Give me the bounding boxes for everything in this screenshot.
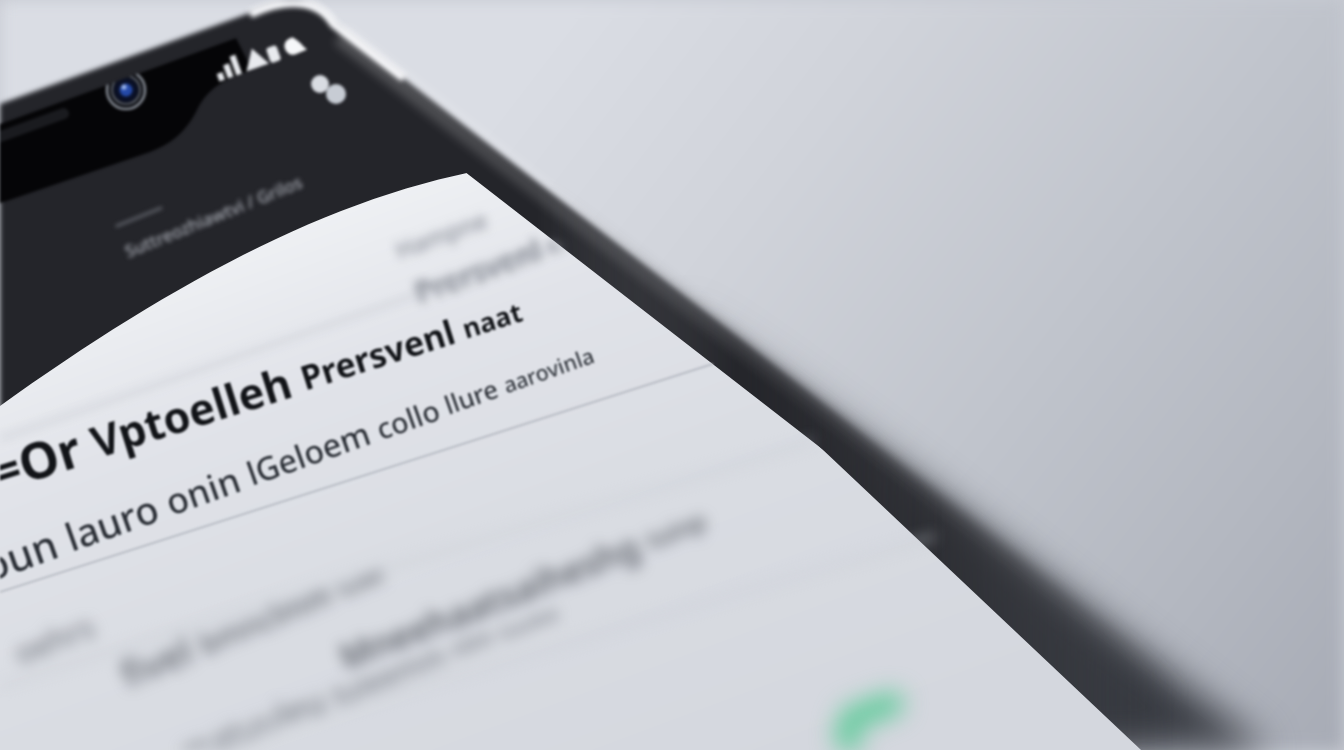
button[interactable]: Suttreozhiawtvi / Grilos bbox=[60, 190, 360, 280]
button[interactable]: Open list item one bbox=[0, 300, 720, 450]
button[interactable]: More options bbox=[300, 64, 356, 120]
button[interactable]: Open list item three bbox=[0, 610, 840, 750]
button[interactable]: Compose bbox=[810, 668, 920, 750]
button[interactable]: Front camera bbox=[100, 64, 156, 120]
button[interactable]: Open list item two bbox=[0, 455, 780, 605]
